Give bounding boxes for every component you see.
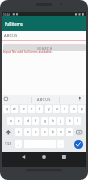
staticText: n [60,130,62,134]
staticText: v [44,130,46,134]
button[interactable]: a [7,117,14,125]
staticText: p [81,107,83,111]
button[interactable]: t [36,105,43,113]
staticText: Input No odd full items available. [3,50,53,54]
button[interactable]: q [3,105,10,113]
staticText: g [44,119,46,123]
button[interactable]: y [45,105,52,113]
button[interactable]: h [49,117,56,125]
button[interactable] [3,128,14,136]
button[interactable]: k [66,117,73,125]
button[interactable]: ABCUS [32,95,56,104]
staticText: k [69,119,71,123]
button[interactable] [74,128,85,136]
staticText: ?123 [5,142,12,146]
button[interactable] [74,140,83,149]
button[interactable]: x [24,128,31,136]
staticText: w [13,107,16,111]
staticText: u [56,107,58,111]
staticText: o [73,107,75,111]
button[interactable]: i [61,105,68,113]
staticText: q [6,107,8,111]
staticText: x [27,130,29,134]
button[interactable]: r [28,105,35,113]
button[interactable]: w [11,105,18,113]
staticText: j [60,119,61,123]
staticText: m [68,130,71,134]
button[interactable]: p [78,105,85,113]
button[interactable]: o [70,105,77,113]
button[interactable]: g [41,117,48,125]
button[interactable]: s [15,117,22,125]
button[interactable] [58,152,70,164]
button[interactable]: f [32,117,39,125]
staticText: a [10,119,12,123]
button[interactable]: u [53,105,60,113]
button[interactable]: m [66,128,73,136]
button[interactable]: d [24,117,31,125]
button[interactable]: b [49,128,56,136]
button[interactable]: j [57,117,64,125]
staticText: d [27,119,29,123]
staticText: ABCUS [4,33,18,39]
staticText: . [60,142,61,146]
button[interactable]: n [57,128,64,136]
staticText: l [77,119,78,123]
button[interactable]: SEARCH [3,44,86,51]
button[interactable]: . [57,140,64,148]
staticText: fullitems [5,21,23,27]
staticText: b [52,130,54,134]
staticText: h [52,119,54,123]
staticText: s [18,119,20,123]
button[interactable]: c [32,128,39,136]
staticText: SEARCH [37,46,53,50]
staticText: t [39,107,41,111]
staticText: , [18,142,19,146]
staticText: r [31,107,33,111]
button[interactable]: l [74,117,81,125]
button[interactable]: ?123 [3,140,14,148]
staticText: c [35,130,37,134]
staticText: i [64,107,65,111]
button[interactable]: e [20,105,27,113]
staticText: y [48,107,50,111]
button[interactable]: v [41,128,48,136]
staticText: ABCUS [37,97,51,102]
button[interactable]: , [15,140,22,148]
button[interactable] [2,32,86,44]
button[interactable]: z [15,128,22,136]
staticText: 10:04 [3,13,10,17]
staticText: f [35,119,37,123]
button[interactable] [38,152,50,164]
staticText: z [18,130,20,134]
button[interactable] [18,152,30,164]
staticText: e [23,107,25,111]
